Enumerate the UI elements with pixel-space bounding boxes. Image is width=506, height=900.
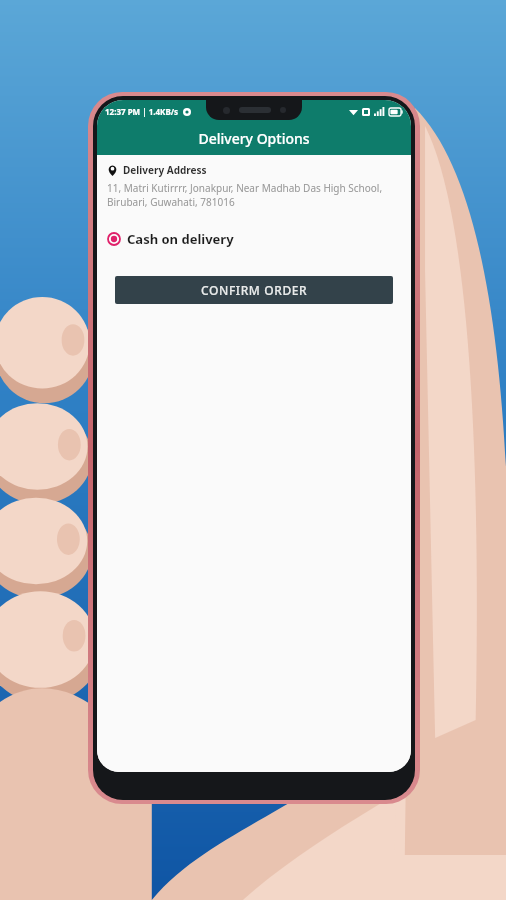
staticText: Cash on delivery [127,230,234,248]
staticText: 12:37 PM | 1.4KB/s [105,106,179,117]
button[interactable]: Cash on delivery [107,227,234,251]
staticText: 11, Matri Kutirrrr, Jonakpur, Near Madha… [107,181,401,209]
staticText: Delivery Address [123,163,207,177]
button[interactable]: CONFIRM ORDER [115,276,393,304]
staticText: CONFIRM ORDER [201,282,308,298]
staticText: Delivery Options [198,129,310,148]
